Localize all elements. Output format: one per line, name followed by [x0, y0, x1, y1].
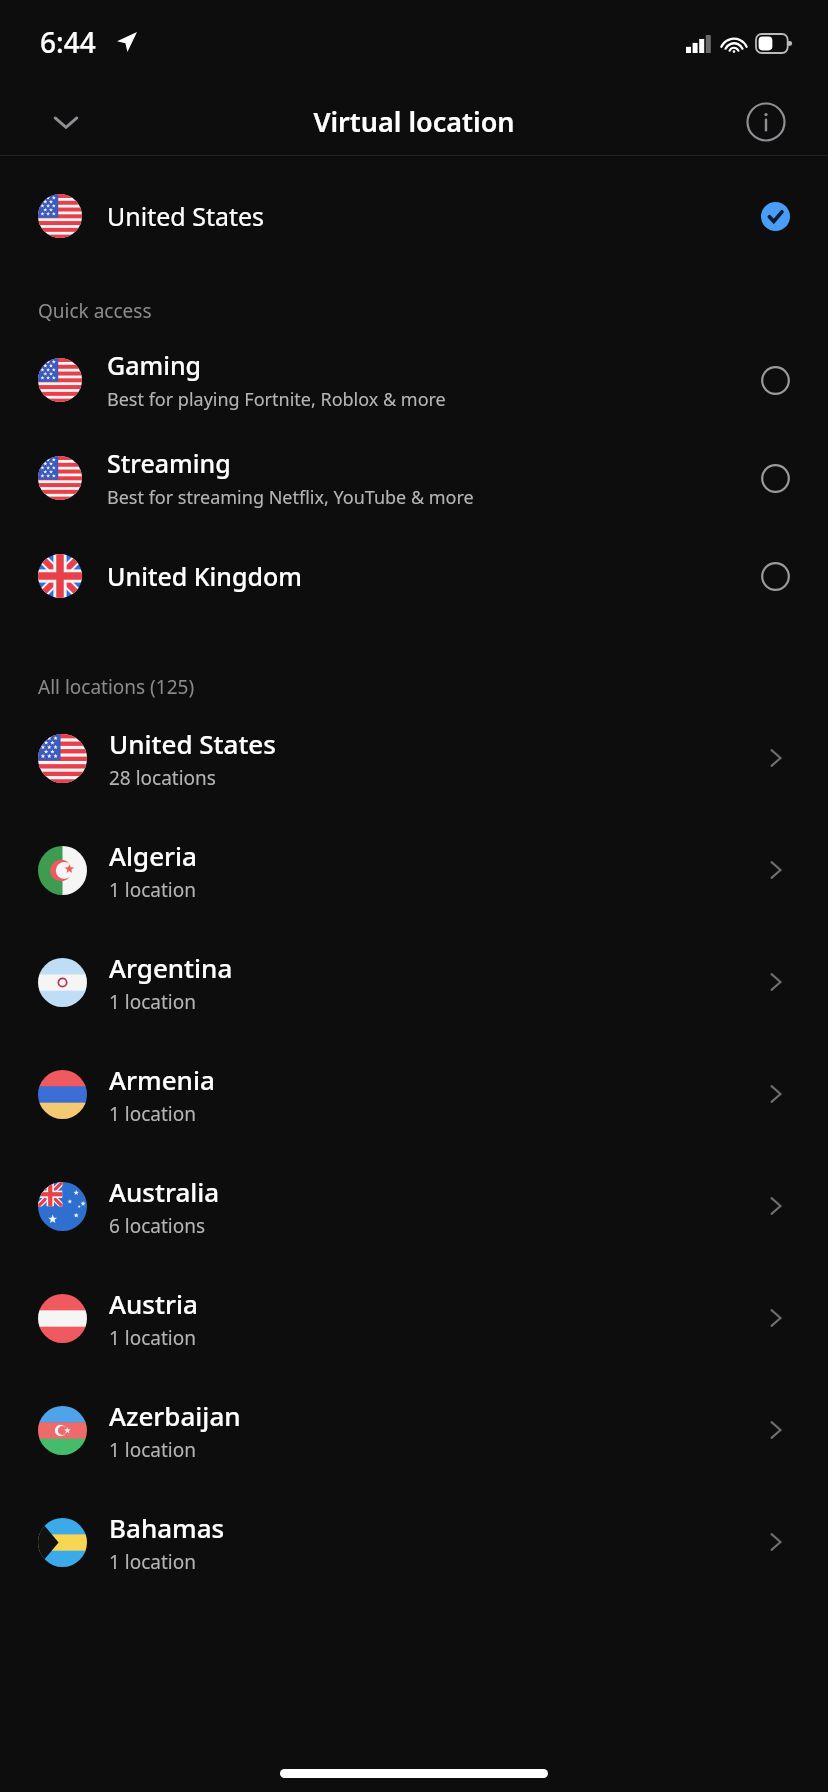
staticText: Quick access: [38, 298, 152, 324]
button[interactable]: Austria: [0, 1262, 828, 1374]
staticText: Austria: [109, 1286, 198, 1321]
staticText: Australia: [109, 1174, 220, 1209]
button[interactable]: United States: [0, 178, 828, 254]
staticText: 1 location: [109, 1437, 196, 1463]
button[interactable]: Algeria: [0, 814, 828, 926]
button[interactable]: Azerbaijan: [0, 1374, 828, 1486]
staticText: United Kingdom: [107, 559, 302, 593]
staticText: Argentina: [109, 950, 233, 985]
button[interactable]: United Kingdom: [0, 536, 828, 616]
staticText: Streaming: [107, 446, 231, 480]
staticText: Azerbaijan: [109, 1398, 241, 1433]
button[interactable]: Argentina: [0, 926, 828, 1038]
staticText: Algeria: [109, 838, 197, 873]
staticText: 1 location: [109, 1325, 196, 1351]
staticText: 1 location: [109, 877, 196, 903]
staticText: 1 location: [109, 1101, 196, 1127]
staticText: Best for playing Fortnite, Roblox & more: [107, 387, 446, 412]
button[interactable]: Gaming: [0, 338, 828, 422]
button[interactable]: Armenia: [0, 1038, 828, 1150]
staticText: 28 locations: [109, 765, 216, 791]
staticText: United States: [109, 726, 276, 761]
staticText: United States: [107, 199, 265, 233]
staticText: Virtual location: [313, 103, 515, 140]
staticText: 1 location: [109, 989, 196, 1015]
staticText: 1 location: [109, 1549, 196, 1575]
staticText: 6:44: [40, 23, 96, 61]
button[interactable]: Streaming: [0, 436, 828, 520]
staticText: Armenia: [109, 1062, 215, 1097]
button[interactable]: Australia: [0, 1150, 828, 1262]
staticText: Bahamas: [109, 1510, 225, 1545]
button[interactable]: Bahamas: [0, 1486, 828, 1598]
button[interactable]: United States: [0, 702, 828, 814]
staticText: All locations (125): [38, 674, 195, 700]
staticText: Gaming: [107, 348, 202, 382]
button[interactable]: Information: [736, 92, 796, 152]
button[interactable]: Collapse: [30, 88, 102, 155]
staticText: Best for streaming Netflix, YouTube & mo…: [107, 485, 474, 510]
staticText: 6 locations: [109, 1213, 206, 1239]
